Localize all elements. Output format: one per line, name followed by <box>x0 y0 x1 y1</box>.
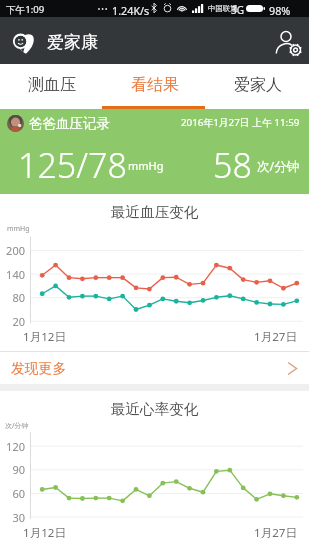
staticText: 98% <box>269 3 291 18</box>
staticText: 下午1:09 <box>6 3 45 16</box>
button[interactable]: 发现更多 <box>0 352 309 384</box>
staticText: 爸爸血压记录 <box>29 115 110 132</box>
staticText: 次/分钟 <box>257 158 300 175</box>
staticText: 125/78 <box>18 142 127 188</box>
staticText: 爱家人 <box>234 75 282 95</box>
staticText: 200 <box>0 243 25 258</box>
button[interactable]: 爸爸血压记录 <box>0 109 309 194</box>
staticText: 测血压 <box>28 75 76 95</box>
button[interactable]: 测血压 <box>0 64 103 109</box>
staticText: 58 <box>213 142 252 188</box>
button[interactable]: Account settings <box>270 26 306 60</box>
staticText: 120 <box>0 439 25 454</box>
staticText: mmHg <box>7 224 30 234</box>
staticText: 最近心率变化 <box>0 400 309 418</box>
staticText: 60 <box>0 486 25 501</box>
staticText: 20 <box>0 314 25 329</box>
staticText: 3G <box>231 3 244 17</box>
staticText: 1月27日 <box>254 525 298 541</box>
staticText: 1月27日 <box>254 329 298 345</box>
button[interactable]: 看结果 <box>103 64 206 109</box>
staticText: 1月12日 <box>23 525 67 541</box>
staticText: 90 <box>0 462 25 477</box>
staticText: 最近血压变化 <box>0 203 309 221</box>
staticText: 1.24K/s <box>112 3 150 18</box>
staticText: 发现更多 <box>11 360 67 377</box>
staticText: 2016年1月27日 上午 11:59 <box>181 116 300 129</box>
staticText: 次/分钟 <box>5 421 29 431</box>
staticText: 80 <box>0 290 25 305</box>
staticText: 140 <box>0 267 25 282</box>
staticText: 爱家康 <box>47 32 98 53</box>
staticText: 1月12日 <box>23 329 67 345</box>
staticText: 30 <box>0 510 25 525</box>
staticText: 看结果 <box>131 75 179 95</box>
button[interactable]: 爱家人 <box>206 64 309 109</box>
staticText: 中国联通 <box>208 4 238 13</box>
staticText: mmHg <box>128 158 164 173</box>
